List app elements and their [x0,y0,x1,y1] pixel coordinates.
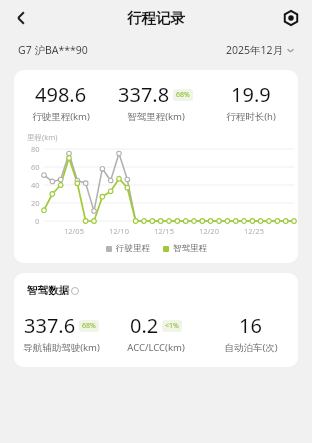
staticText: 80 [31,144,40,154]
staticText: 行程记录 [127,9,185,27]
staticText: <1% [165,321,179,331]
staticText: G7 沪BA***90 [18,43,88,57]
staticText: 0 [35,216,40,226]
button[interactable]: 337.6 [14,312,108,354]
staticText: 60 [31,162,40,172]
button[interactable]: 498.6 [14,81,108,123]
staticText: 20 [31,198,40,208]
button[interactable]: 16 [203,312,298,354]
staticText: 337.6 [24,312,76,339]
staticText: 智驾数据 [27,284,69,297]
staticText: 12/15 [154,226,174,236]
button[interactable]: 337.8 [108,81,203,123]
staticText: 行程时长(h) [226,110,276,123]
staticText: 40 [31,180,40,190]
staticText: 2025年12月 [226,43,284,57]
staticText: 自动泊车(次) [224,341,278,354]
staticText: 行驶里程 [116,243,150,254]
staticText: 智驾里程(km) [127,110,185,123]
staticText: 0.2 [130,312,159,339]
button[interactable]: 0.2 [108,312,203,354]
button[interactable]: Back [6,3,36,33]
staticText: 12/25 [244,226,264,236]
other: Info [71,287,79,295]
staticText: 里程(km) [27,132,58,142]
staticText: 12/20 [199,226,219,236]
staticText: 行驶里程(km) [32,110,90,123]
staticText: 68% [176,90,190,100]
staticText: 16 [239,312,262,339]
staticText: 337.8 [118,81,170,108]
button[interactable]: 2025年12月 [226,43,294,57]
staticText: 498.6 [35,81,87,108]
staticText: 智驾里程 [173,243,207,254]
staticText: ACC/LCC(km) [127,341,185,354]
staticText: 68% [82,321,96,331]
staticText: 12/05 [64,226,84,236]
staticText: 19.9 [231,81,271,108]
staticText: 导航辅助驾驶(km) [23,341,100,354]
button[interactable]: 智驾数据 [27,284,79,297]
button[interactable]: 19.9 [203,81,298,123]
staticText: 12/10 [109,226,129,236]
button[interactable]: Settings [277,4,305,32]
